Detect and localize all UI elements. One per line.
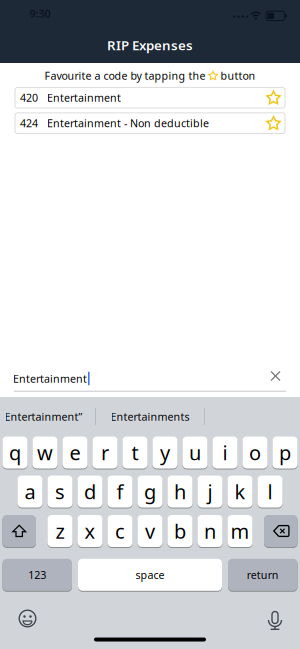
button[interactable]: 420 xyxy=(15,87,285,108)
staticText: f xyxy=(116,478,123,505)
staticText: o xyxy=(249,439,261,466)
button[interactable]: l xyxy=(257,475,283,507)
staticText: u xyxy=(189,439,201,466)
staticText: x xyxy=(84,518,95,544)
staticText: return xyxy=(247,568,279,582)
staticText: button xyxy=(220,68,255,83)
staticText: n xyxy=(204,518,216,544)
staticText: Entertainment - Non deductible xyxy=(47,116,209,130)
button[interactable]: d xyxy=(77,475,103,507)
staticText: 123 xyxy=(28,568,46,582)
staticText: l xyxy=(267,478,272,505)
button[interactable]: a xyxy=(17,475,43,507)
staticText: e xyxy=(69,439,80,466)
button[interactable]: w xyxy=(32,436,58,468)
button[interactable]: Search text field xyxy=(12,365,288,391)
button[interactable]: return xyxy=(228,559,298,591)
staticText: Entertainment” xyxy=(4,409,82,424)
button[interactable]: j xyxy=(197,475,223,507)
button[interactable]: Entertainment” xyxy=(4,409,82,424)
staticText: 9:30 xyxy=(29,6,50,21)
button[interactable]: h xyxy=(167,475,193,507)
staticText: r xyxy=(101,439,109,466)
staticText: z xyxy=(55,518,64,544)
button[interactable]: c xyxy=(107,515,133,547)
button[interactable]: n xyxy=(197,515,223,547)
button[interactable]: t xyxy=(122,436,148,468)
staticText: a xyxy=(24,478,35,505)
button[interactable]: e xyxy=(62,436,88,468)
staticText: s xyxy=(55,478,65,505)
staticText: p xyxy=(279,439,291,466)
button[interactable]: u xyxy=(182,436,208,468)
button[interactable]: i xyxy=(212,436,238,468)
staticText: h xyxy=(174,478,186,505)
staticText: i xyxy=(222,439,227,466)
button[interactable]: f xyxy=(107,475,133,507)
staticText: v xyxy=(145,518,155,544)
staticText: d xyxy=(84,478,96,505)
button[interactable]: x xyxy=(77,515,103,547)
button[interactable]: m xyxy=(227,515,253,547)
button[interactable]: r xyxy=(92,436,118,468)
button[interactable]: z xyxy=(47,515,73,547)
staticText: space xyxy=(135,568,164,582)
staticText: 424 xyxy=(20,116,38,130)
staticText: g xyxy=(144,478,156,505)
staticText: Entertainment xyxy=(47,91,121,105)
button[interactable]: space xyxy=(78,559,222,591)
button[interactable]: b xyxy=(167,515,193,547)
button[interactable]: Favourite xyxy=(264,89,282,107)
button[interactable]: v xyxy=(137,515,163,547)
button[interactable]: Clear text xyxy=(269,370,281,382)
button[interactable]: p xyxy=(272,436,298,468)
staticText: j xyxy=(207,478,212,505)
staticText: RIP Expenses xyxy=(107,36,193,54)
staticText: w xyxy=(37,439,53,466)
button[interactable]: g xyxy=(137,475,163,507)
staticText: t xyxy=(131,439,138,466)
button[interactable]: Entertainments xyxy=(110,409,189,424)
staticText: c xyxy=(115,518,125,544)
button[interactable]: k xyxy=(227,475,253,507)
button[interactable]: Shift xyxy=(2,515,36,547)
button[interactable]: 424 xyxy=(15,113,285,133)
button[interactable]: s xyxy=(47,475,73,507)
staticText: m xyxy=(230,518,249,544)
button[interactable]: Emoji xyxy=(15,606,39,630)
staticText: y xyxy=(160,439,170,466)
staticText: Entertainment xyxy=(13,371,87,386)
button[interactable]: o xyxy=(242,436,268,468)
button[interactable]: q xyxy=(2,436,28,468)
staticText: 420 xyxy=(20,91,38,105)
staticText: k xyxy=(234,478,245,505)
staticText: Favourite a code by tapping the xyxy=(44,68,205,83)
button[interactable]: Favourite xyxy=(264,114,282,132)
button[interactable]: Numbers xyxy=(2,559,72,591)
button[interactable]: Dictation xyxy=(263,608,287,632)
button[interactable]: Delete xyxy=(264,515,298,547)
staticText: b xyxy=(174,518,186,544)
button[interactable]: y xyxy=(152,436,178,468)
staticText: Entertainments xyxy=(110,409,189,424)
staticText: q xyxy=(9,439,21,466)
